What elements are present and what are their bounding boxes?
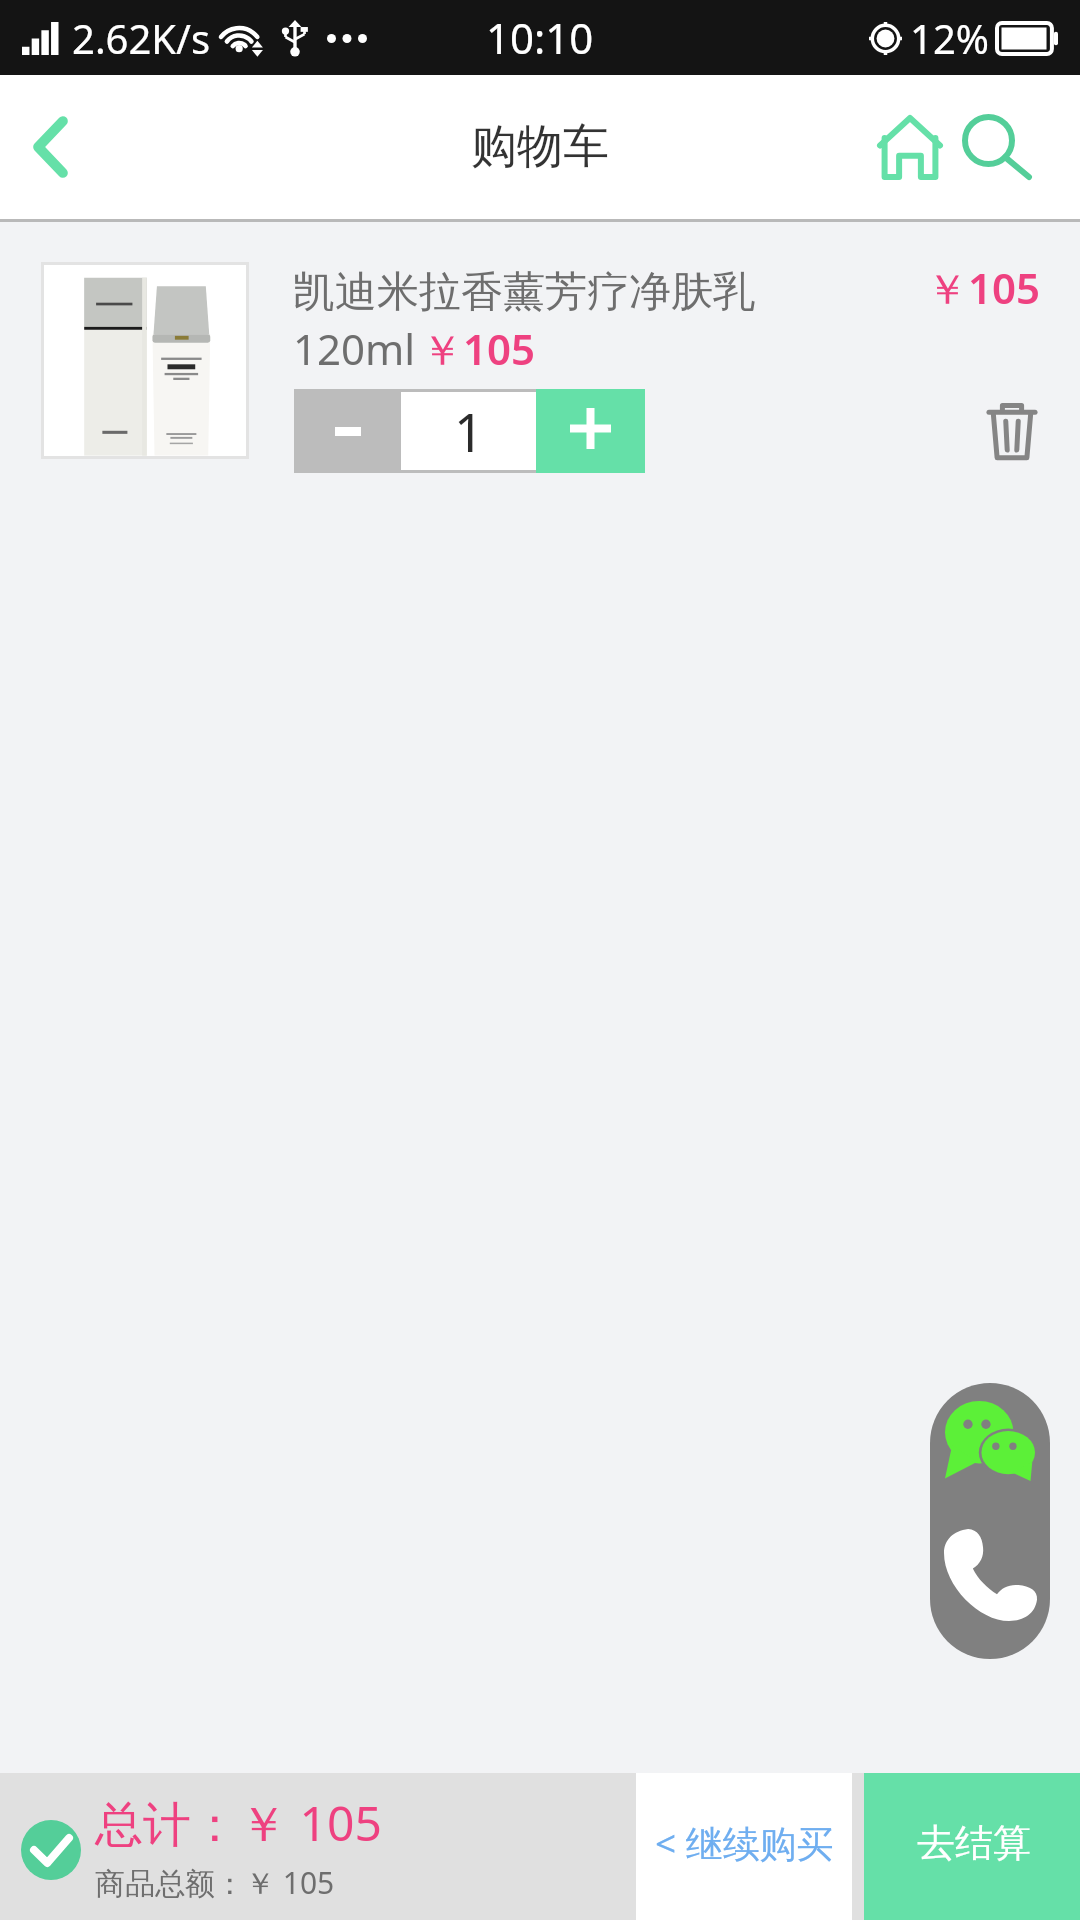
button[interactable]: Call xyxy=(936,1521,1044,1629)
button[interactable]: Increase quantity xyxy=(536,389,645,473)
staticText: 总计：￥ 105 xyxy=(95,1790,382,1856)
button[interactable]: Delete xyxy=(958,378,1066,486)
staticText: 购物车 xyxy=(471,118,609,176)
staticText: 凯迪米拉香薰芳疗净肤乳 xyxy=(293,266,755,319)
button[interactable]: WeChat xyxy=(934,1385,1046,1497)
button[interactable]: Search xyxy=(953,92,1040,202)
staticText: 1 xyxy=(454,396,484,467)
staticText: 12% xyxy=(910,11,989,65)
button[interactable]: Back xyxy=(0,75,100,219)
staticText: ￥105 xyxy=(926,259,1041,316)
staticText: 商品总额：￥ 105 xyxy=(95,1862,335,1903)
staticText: < 继续购买 xyxy=(655,1817,834,1868)
staticText: 120ml xyxy=(293,320,416,377)
staticText: 10:10 xyxy=(486,9,594,66)
button[interactable]: Home xyxy=(866,92,953,202)
button[interactable]: 去结算 xyxy=(864,1773,1080,1920)
staticText: 2.62K/s xyxy=(72,11,211,65)
button[interactable]: 总计：￥ 105 xyxy=(0,1773,636,1920)
button[interactable]: < 继续购买 xyxy=(636,1773,852,1920)
staticText: 去结算 xyxy=(917,1819,1031,1867)
button[interactable]: Decrease quantity xyxy=(294,389,401,473)
staticText: ￥105 xyxy=(421,320,536,377)
